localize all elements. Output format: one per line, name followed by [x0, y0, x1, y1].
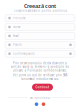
button[interactable]: Nume [5, 23, 75, 30]
staticText: Completează datele pentru a continua [13, 9, 66, 12]
staticText: Parolă [13, 43, 21, 46]
staticText: Email [13, 34, 19, 38]
staticText: utilizare și Politica de confidențialita… [12, 69, 67, 72]
staticText: Vei primi un cod de verificare prin SMS [13, 73, 67, 77]
staticText: Prenume [13, 16, 26, 20]
button[interactable]: Email [5, 32, 75, 39]
staticText: Creează cont [24, 2, 56, 10]
staticText: sau continuă cu [29, 96, 50, 99]
staticText: sunt de acord cu Termenii și condițiile … [10, 65, 69, 68]
button[interactable]: Continue with Facebook [35, 102, 38, 106]
staticText: Confirmă parola [13, 52, 34, 55]
button[interactable]: Parolă [5, 41, 75, 48]
staticText: la numărul introdus mai sus. [21, 77, 59, 81]
button[interactable]: Continuă [32, 84, 53, 91]
button[interactable]: Confirmă parola [5, 50, 75, 57]
staticText: Nume [13, 25, 21, 29]
button[interactable]: Continue with Google [42, 102, 45, 106]
staticText: Prin crearea contului declar că am citit… [13, 61, 67, 65]
staticText: Continuă [35, 85, 49, 89]
button[interactable]: Prenume [5, 15, 75, 22]
